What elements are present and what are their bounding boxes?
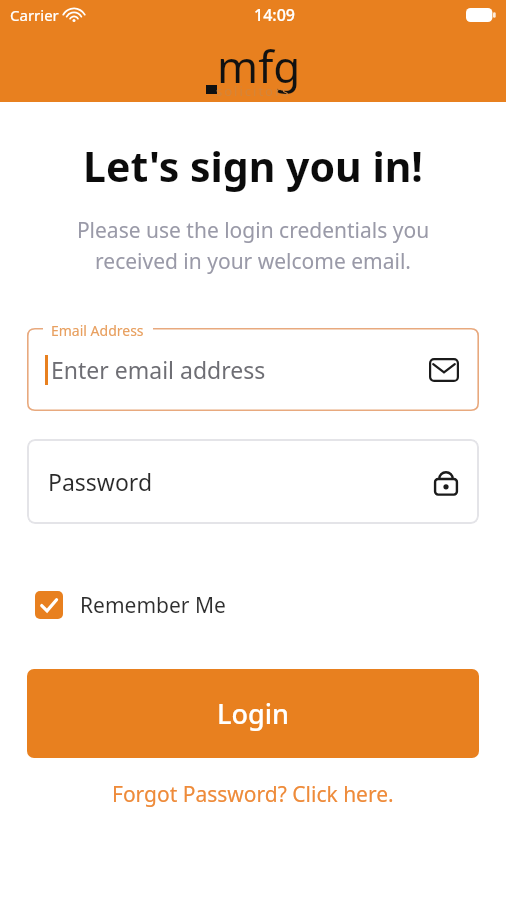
staticText: mfg xyxy=(217,36,301,96)
staticText: 14:09 xyxy=(254,4,295,26)
other: Password xyxy=(433,467,459,497)
staticText: Let's sign you in! xyxy=(0,138,506,194)
staticText: Please use the login credentials you rec… xyxy=(38,216,468,275)
button[interactable]: Login xyxy=(27,669,479,758)
staticText: solicitors xyxy=(216,82,291,100)
staticText: Password xyxy=(48,466,153,497)
staticText: Login xyxy=(217,695,289,732)
staticText: Email Address xyxy=(51,321,144,340)
staticText: Carrier xyxy=(10,5,59,25)
other: Email xyxy=(429,358,459,382)
button[interactable]: Forgot Password? Click here. xyxy=(100,774,406,815)
staticText: Remember Me xyxy=(80,591,226,620)
button[interactable]: Password xyxy=(27,439,479,524)
button[interactable]: Enter email address xyxy=(27,328,479,411)
button[interactable]: Remember Me xyxy=(27,583,234,627)
staticText: Enter email address xyxy=(51,354,266,385)
